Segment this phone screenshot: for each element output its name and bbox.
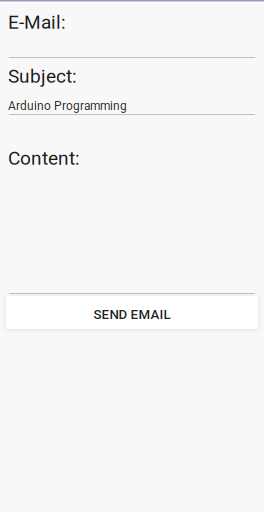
staticText: Content:	[8, 147, 80, 169]
button[interactable]: Subject:	[0, 65, 264, 115]
staticText: Subject:	[8, 65, 77, 87]
staticText: Arduino Programming	[8, 99, 127, 113]
staticText: SEND EMAIL	[93, 307, 170, 322]
button[interactable]: E-Mail:	[0, 10, 264, 58]
button[interactable]: SEND EMAIL	[6, 296, 258, 329]
staticText: E-Mail:	[8, 11, 66, 33]
button[interactable]: Content:	[0, 147, 264, 294]
